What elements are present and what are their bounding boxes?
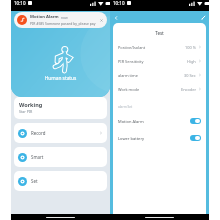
button[interactable]: Set xyxy=(14,171,107,191)
button[interactable]: Working xyxy=(14,97,107,119)
staticText: Working xyxy=(19,101,43,108)
button[interactable]: Motion Alarm xyxy=(14,12,107,28)
staticText: High xyxy=(187,59,196,64)
staticText: PIR #585 Someone passed by, please pay a… xyxy=(30,21,99,26)
staticText: Smart xyxy=(31,154,44,160)
button[interactable]: Postive/Isolant xyxy=(113,40,206,54)
staticText: alarm Set xyxy=(118,105,133,109)
staticText: 10:10 xyxy=(14,0,26,6)
staticText: alarm time xyxy=(118,73,138,78)
staticText: Set xyxy=(31,178,38,184)
button[interactable]: Edit xyxy=(199,13,208,22)
staticText: Record xyxy=(31,130,46,136)
staticText: Work mode xyxy=(118,87,140,92)
button[interactable]: Lower battery xyxy=(113,134,206,142)
button[interactable]: PIR Sensitivity xyxy=(113,54,206,68)
button[interactable]: Motion Alarm xyxy=(113,117,206,125)
staticText: Human status xyxy=(11,75,110,82)
staticText: Motion Alarm xyxy=(30,14,59,20)
staticText: 30 Sec xyxy=(184,73,196,78)
button[interactable]: Work mode xyxy=(113,82,206,96)
button[interactable]: Record xyxy=(14,123,107,143)
button[interactable]: Back xyxy=(111,13,120,22)
staticText: Star PIR xyxy=(19,109,33,114)
button[interactable]: Smart xyxy=(14,147,107,167)
staticText: 10:10 xyxy=(113,0,125,6)
staticText: Postive/Isolant xyxy=(118,45,146,50)
staticText: 100 % xyxy=(185,45,196,50)
staticText: PIR Sensitivity xyxy=(118,59,144,64)
staticText: Test xyxy=(113,30,206,36)
staticText: Lower battery xyxy=(118,136,145,141)
button[interactable]: Dismiss xyxy=(99,18,104,23)
button[interactable]: alarm time xyxy=(113,68,206,82)
staticText: now xyxy=(61,15,68,20)
staticText: Motion Alarm xyxy=(118,119,144,124)
staticText: Encoder xyxy=(181,87,196,92)
